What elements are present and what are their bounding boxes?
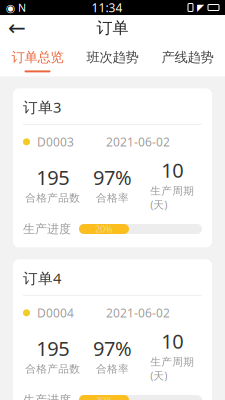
staticText: 97% <box>93 164 132 190</box>
staticText: 11:34 <box>91 0 122 15</box>
staticText: D0004 <box>37 305 74 321</box>
button[interactable]: 班次趋势 <box>75 41 150 76</box>
button[interactable]: Back <box>0 15 34 41</box>
staticText: 20% <box>95 394 113 400</box>
staticText: ◉ N <box>6 0 26 15</box>
button[interactable]: 订单4 <box>13 259 212 400</box>
button[interactable]: 订单3 <box>13 88 212 247</box>
staticText: 订单总览 <box>11 49 63 65</box>
staticText: 合格产品数 <box>25 191 80 204</box>
staticText: 产线趋势 <box>161 49 213 65</box>
staticText: ← <box>8 16 26 40</box>
staticText: 生产周期(天) <box>150 355 194 383</box>
staticText: 订单 <box>96 18 128 38</box>
staticText: 2021-06-02 <box>106 134 170 150</box>
staticText: 20% <box>95 223 113 235</box>
staticText: 合格率 <box>96 362 129 375</box>
staticText: 生产进度 <box>23 222 71 236</box>
staticText: D0003 <box>37 134 74 150</box>
staticText: 订单4 <box>23 268 61 288</box>
staticText: 195 <box>36 335 69 361</box>
staticText: 97% <box>93 335 132 361</box>
staticText: 订单3 <box>23 97 61 117</box>
staticText: 合格率 <box>96 191 129 204</box>
staticText: 班次趋势 <box>86 49 138 65</box>
staticText: 合格产品数 <box>25 362 80 375</box>
staticText: 生产进度 <box>23 393 71 400</box>
staticText: 195 <box>36 164 69 190</box>
button[interactable]: 产线趋势 <box>150 41 225 76</box>
staticText: ◤ <box>197 2 204 13</box>
staticText: 10 <box>161 157 183 183</box>
staticText: 生产周期(天) <box>150 184 194 212</box>
staticText: 10 <box>161 328 183 354</box>
button[interactable]: 订单总览 <box>0 41 75 76</box>
staticText: 2021-06-02 <box>106 305 170 321</box>
